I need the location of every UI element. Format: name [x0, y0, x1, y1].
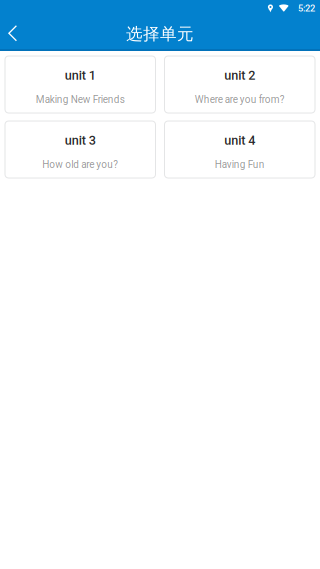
staticText: 选择单元 [126, 23, 194, 44]
button[interactable]: unit 4 [164, 121, 315, 178]
button[interactable]: Back [0, 19, 28, 49]
staticText: unit 4 [224, 133, 255, 148]
staticText: 5:22 [298, 3, 315, 14]
button[interactable]: unit 1 [5, 56, 155, 113]
staticText: Having Fun [215, 159, 265, 170]
button[interactable]: unit 2 [164, 56, 315, 113]
staticText: Where are you from? [195, 94, 285, 105]
staticText: unit 1 [65, 68, 96, 83]
staticText: Making New Friends [36, 94, 125, 105]
staticText: unit 3 [65, 133, 96, 148]
staticText: unit 2 [224, 68, 255, 83]
button[interactable]: unit 3 [5, 121, 155, 178]
staticText: How old are you? [42, 159, 118, 170]
